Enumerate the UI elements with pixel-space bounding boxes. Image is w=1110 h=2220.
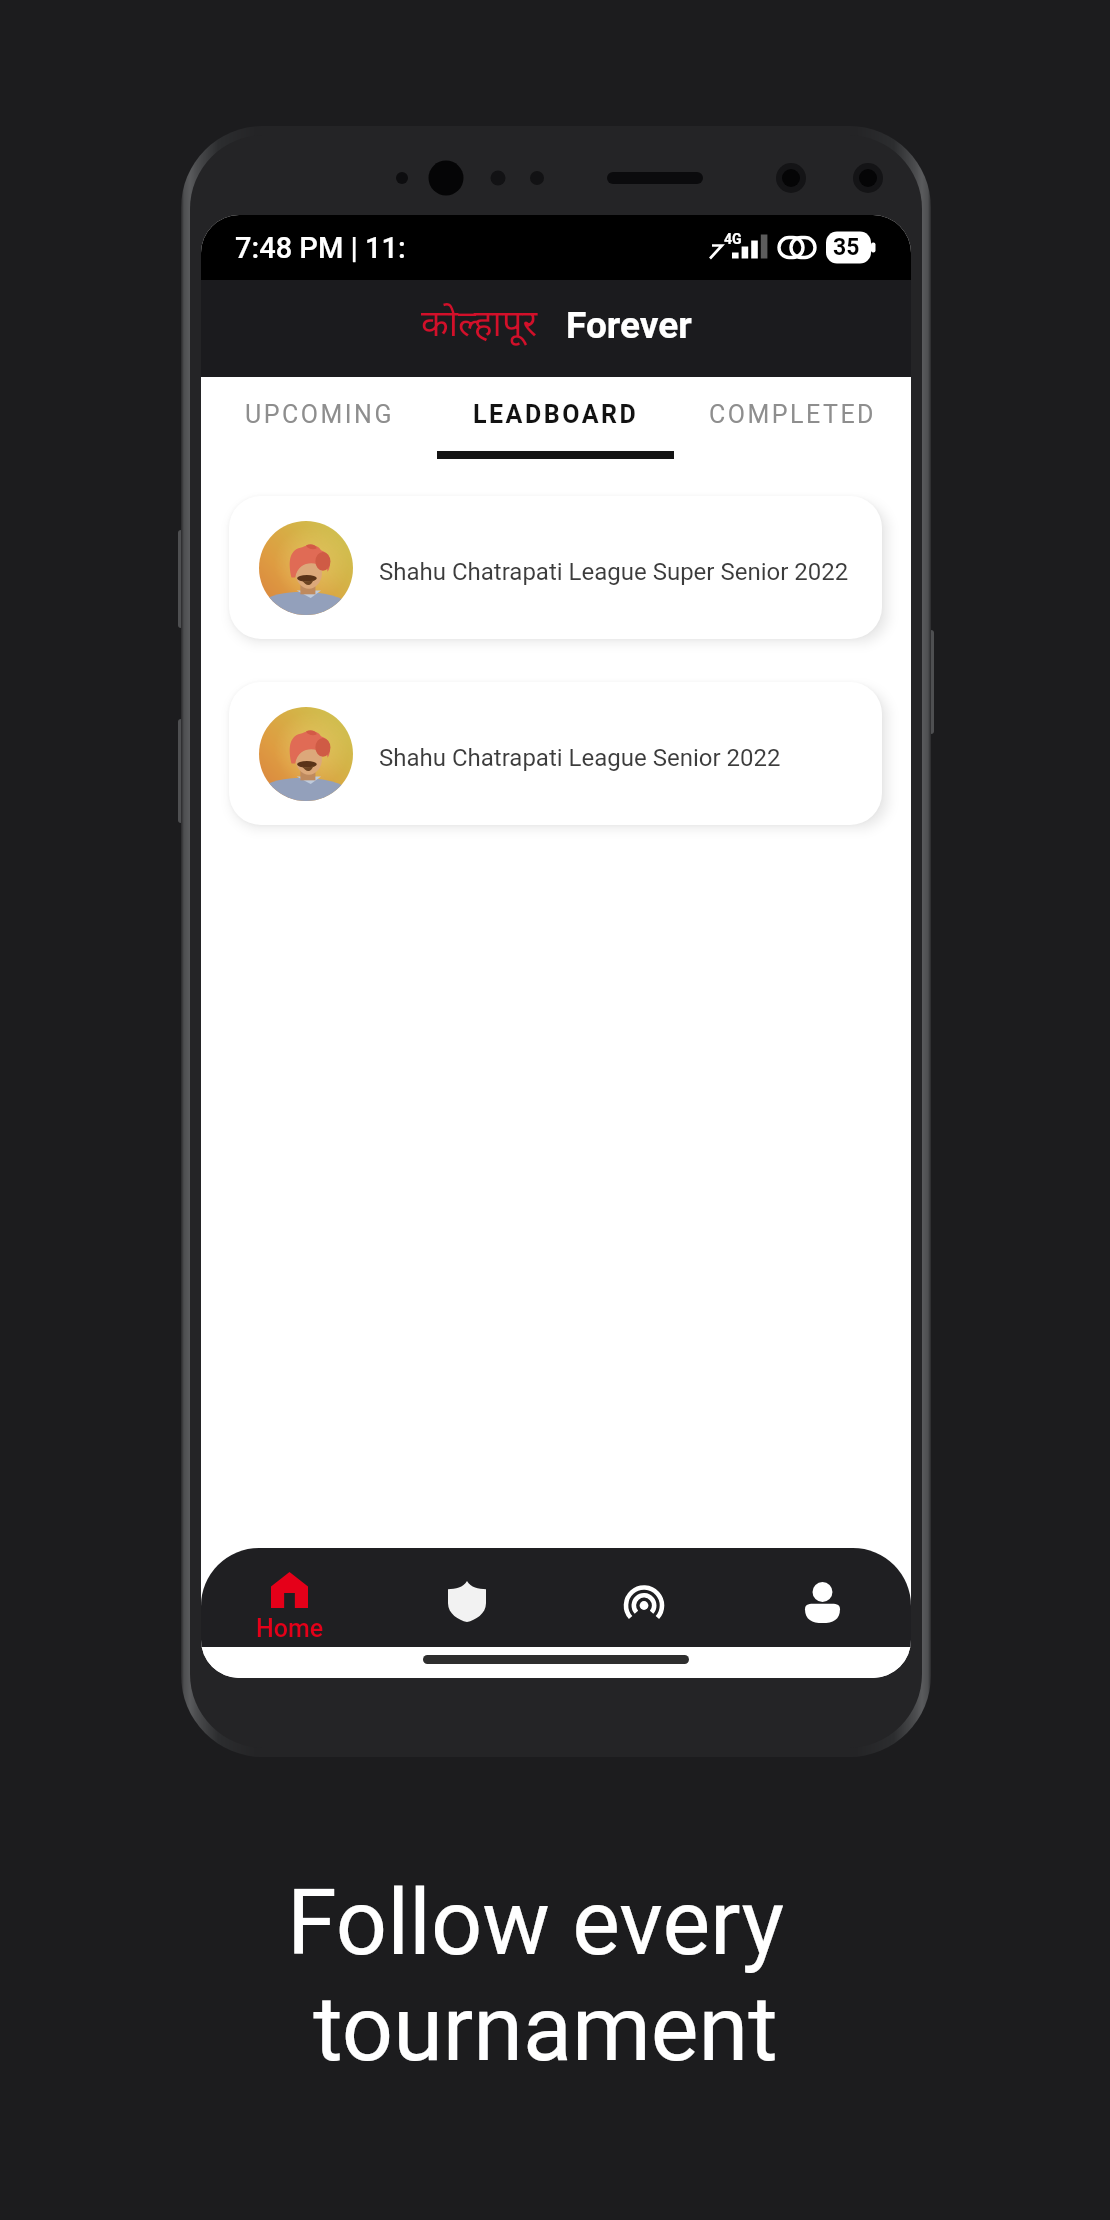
button[interactable]: Live	[555, 1548, 733, 1647]
staticText: 4G	[724, 231, 742, 247]
button[interactable]: Shahu Chatrapati League Super Senior 202…	[229, 496, 882, 639]
button[interactable]: LEADBOARD	[437, 377, 674, 461]
staticText: Follow every	[287, 1871, 784, 1976]
button[interactable]: Home	[201, 1548, 378, 1647]
staticText: Shahu Chatrapati League Senior 2022	[379, 744, 781, 772]
staticText: Forever	[566, 304, 692, 347]
button[interactable]: Teams	[378, 1548, 555, 1647]
staticText: UPCOMING	[245, 400, 394, 429]
button[interactable]: UPCOMING	[201, 377, 437, 461]
button[interactable]: COMPLETED	[674, 377, 911, 461]
staticText: 35	[833, 234, 860, 261]
staticText: COMPLETED	[709, 400, 877, 429]
staticText: 7:48 PM | 11:	[235, 231, 406, 265]
staticText: tournament	[313, 1977, 778, 2082]
staticText: कोल्हापूर	[421, 304, 538, 351]
button[interactable]: Profile	[733, 1548, 911, 1647]
staticText: LEADBOARD	[473, 400, 639, 429]
staticText: Home	[256, 1614, 324, 1643]
staticText: Shahu Chatrapati League Super Senior 202…	[379, 558, 849, 586]
button[interactable]: Shahu Chatrapati League Senior 2022	[229, 682, 882, 825]
